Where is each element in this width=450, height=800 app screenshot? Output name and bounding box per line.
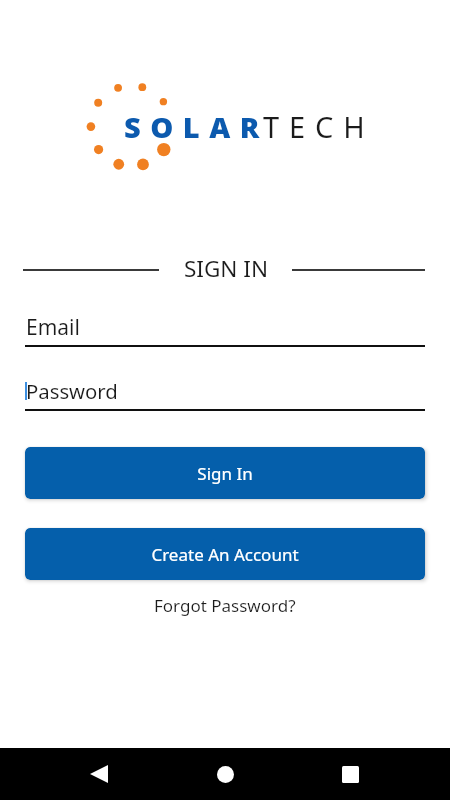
button[interactable]: [25, 308, 425, 348]
button[interactable]: Recent apps: [326, 750, 374, 798]
button[interactable]: Home: [201, 750, 249, 798]
button[interactable]: [25, 372, 425, 412]
staticText: TECH: [263, 107, 375, 146]
button[interactable]: Forgot Password?: [0, 592, 450, 618]
staticText: Sign In: [197, 462, 253, 485]
staticText: Password: [26, 377, 118, 405]
staticText: SOLAR: [124, 107, 269, 146]
staticText: Email: [26, 313, 80, 342]
staticText: SIGN IN: [184, 253, 269, 284]
staticText: Forgot Password?: [154, 594, 296, 617]
staticText: Create An Account: [151, 543, 299, 566]
button[interactable]: Create An Account: [25, 528, 425, 580]
button[interactable]: Sign In: [25, 447, 425, 499]
button[interactable]: Back: [77, 750, 125, 798]
